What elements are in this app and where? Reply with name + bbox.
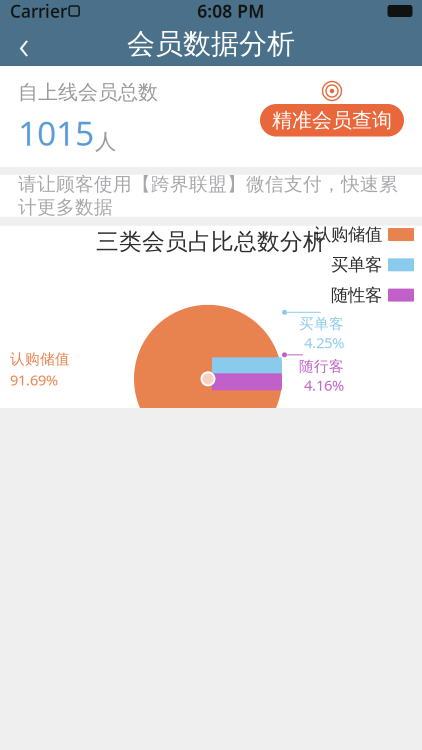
staticText: 认购储值 — [10, 350, 70, 368]
staticText: ‹ — [18, 17, 29, 70]
staticText: 会员数据分析 — [127, 27, 295, 61]
staticText: 随性客 — [331, 284, 382, 306]
staticText: 6:08 PM — [197, 0, 264, 22]
staticText: 精准会员查询 — [272, 108, 392, 133]
staticText: 认购储值 — [314, 224, 382, 245]
staticText: 三类会员占比总数分析 — [96, 228, 326, 256]
button[interactable]: Back — [0, 22, 48, 66]
staticText: Carrier — [10, 0, 67, 22]
staticText: 4.16% — [304, 375, 344, 395]
staticText: 自上线会员总数 — [18, 80, 158, 105]
staticText: 91.69% — [10, 370, 58, 390]
staticText: 人 — [95, 129, 116, 155]
button[interactable]: 精准会员查询 — [260, 80, 404, 137]
staticText: 4.25% — [304, 333, 344, 352]
staticText: 请让顾客使用【跨界联盟】微信支付，快速累计更多数据 — [18, 173, 398, 219]
staticText: 随行客 — [299, 357, 344, 375]
staticText: 买单客 — [299, 315, 344, 333]
staticText: 1015 — [18, 111, 94, 155]
staticText: 买单客 — [331, 254, 382, 275]
